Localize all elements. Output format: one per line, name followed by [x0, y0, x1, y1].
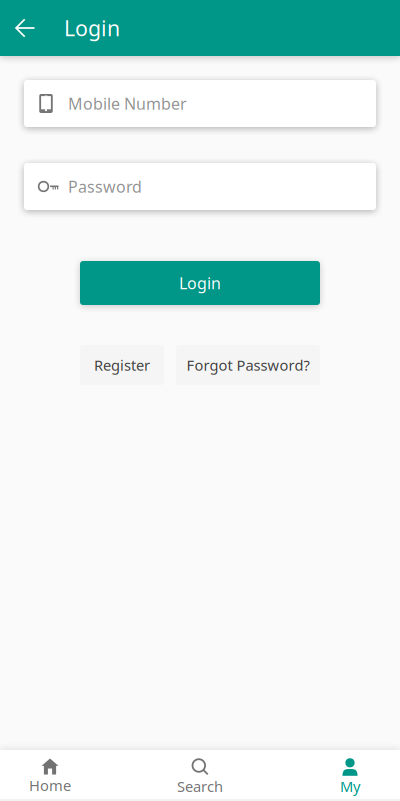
button[interactable]: Search [150, 749, 250, 799]
staticText: Login [179, 272, 221, 294]
staticText: Mobile Number [68, 93, 187, 114]
button[interactable]: Password [24, 163, 376, 210]
staticText: Register [94, 355, 150, 375]
button[interactable]: Forgot Password? [176, 345, 320, 385]
staticText: My [340, 776, 360, 796]
button[interactable]: Mobile Number [24, 80, 376, 127]
staticText: Forgot Password? [186, 355, 309, 375]
staticText: Search [177, 776, 223, 796]
staticText: Home [29, 775, 71, 795]
button[interactable]: Back [8, 0, 42, 56]
button[interactable]: Register [80, 345, 164, 385]
button[interactable]: Home [0, 749, 100, 799]
button[interactable]: My [300, 749, 400, 799]
button[interactable]: Login [80, 261, 320, 305]
staticText: Login [64, 14, 120, 42]
staticText: Password [68, 176, 142, 197]
